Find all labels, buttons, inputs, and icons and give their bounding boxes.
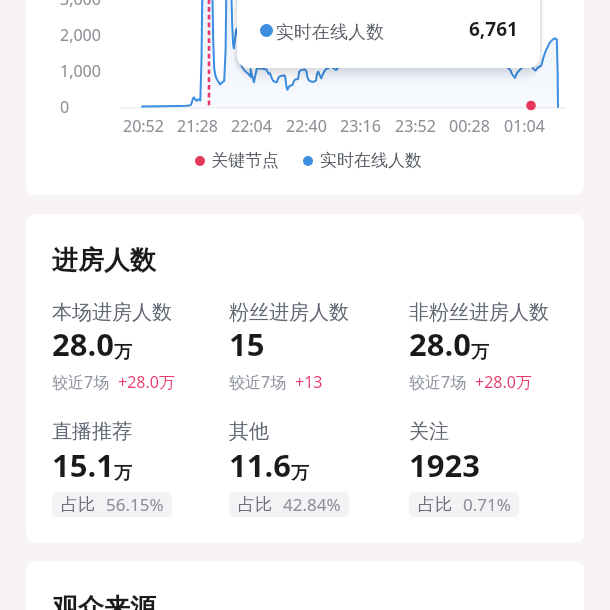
staticText: 23:52 — [395, 115, 436, 137]
staticText: 2,000 — [60, 24, 101, 46]
button[interactable]: 非粉丝进房人数 — [409, 300, 549, 325]
button[interactable]: 占比 — [409, 492, 519, 517]
staticText: 23:16 — [340, 115, 381, 137]
button[interactable]: 粉丝进房人数 — [229, 300, 349, 325]
staticText: 实时在线人数 — [320, 150, 422, 171]
staticText: 15 — [229, 323, 265, 365]
staticText: 万 — [114, 341, 132, 364]
staticText: 11.6 — [229, 444, 291, 486]
staticText: 较近7场 — [409, 371, 467, 393]
staticText: 实时在线人数 — [276, 21, 384, 44]
staticText: 万 — [291, 462, 309, 485]
button[interactable]: 占比 — [229, 492, 349, 517]
staticText: 22:40 — [286, 115, 327, 137]
staticText: 进房人数 — [52, 244, 156, 277]
staticText: 观众来源 — [52, 592, 156, 610]
staticText: 较近7场 — [52, 371, 110, 393]
button[interactable]: 占比 — [52, 492, 172, 517]
staticText: 其他 — [229, 419, 269, 444]
staticText: 万 — [471, 341, 489, 364]
staticText: 56.15% — [106, 493, 164, 516]
staticText: 非粉丝进房人数 — [409, 300, 549, 325]
staticText: 占比 — [238, 494, 272, 515]
staticText: 3,000 — [60, 0, 101, 10]
staticText: 20:52 — [123, 115, 164, 137]
staticText: 0 — [60, 96, 70, 118]
staticText: 28.0 — [52, 323, 114, 365]
button[interactable]: 实时在线人数 — [303, 150, 422, 171]
staticText: 1923 — [409, 444, 480, 486]
button[interactable]: 本场进房人数 — [52, 300, 172, 325]
staticText: 关注 — [409, 419, 449, 444]
staticText: 22:04 — [231, 115, 272, 137]
staticText: 占比 — [61, 494, 95, 515]
staticText: +13 — [295, 371, 323, 393]
staticText: 42.84% — [283, 493, 341, 516]
staticText: 直播推荐 — [52, 419, 132, 444]
button[interactable]: 其他 — [229, 419, 269, 444]
button[interactable]: 直播推荐 — [52, 419, 132, 444]
staticText: 15.1 — [52, 444, 114, 486]
staticText: 万 — [114, 462, 132, 485]
staticText: 00:28 — [449, 115, 490, 137]
staticText: 粉丝进房人数 — [229, 300, 349, 325]
staticText: 28.0 — [409, 323, 471, 365]
staticText: 6,761 — [469, 16, 518, 42]
staticText: 01:04 — [504, 115, 545, 137]
staticText: 关键节点 — [211, 150, 279, 171]
staticText: 占比 — [418, 494, 452, 515]
staticText: 1,000 — [60, 60, 101, 82]
staticText: +28.0万 — [118, 371, 175, 393]
staticText: 本场进房人数 — [52, 300, 172, 325]
staticText: 较近7场 — [229, 371, 287, 393]
staticText: 21:28 — [177, 115, 218, 137]
staticText: +28.0万 — [475, 371, 532, 393]
staticText: 0.71% — [463, 493, 511, 516]
button[interactable]: 关键节点 — [195, 150, 279, 171]
button[interactable]: 关注 — [409, 419, 449, 444]
